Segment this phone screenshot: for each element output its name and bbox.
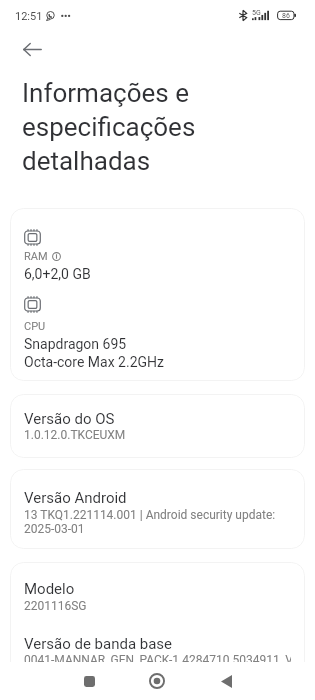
staticText: 2025-03-01 (24, 522, 85, 536)
staticText: 1.0.12.0.TKCEUXM (24, 428, 126, 442)
staticText: 6,0+2,0 GB (24, 266, 91, 282)
button[interactable]: RAM (10, 208, 305, 381)
staticText: 5G (252, 9, 261, 17)
staticText: Versão do OS (24, 410, 115, 428)
staticText: 2201116SG (24, 599, 87, 613)
staticText: 86 (282, 12, 290, 20)
button[interactable]: Versão Android (10, 469, 305, 549)
staticText: Modelo (24, 580, 75, 598)
button[interactable]: Back (11, 34, 54, 64)
button[interactable]: Versão do OS (10, 394, 305, 458)
staticText: Octa-core Max 2.2GHz (24, 354, 164, 370)
staticText: 12:51 (15, 10, 43, 23)
staticText: Versão Android (24, 489, 127, 507)
staticText: Snapdragon 695 (24, 336, 127, 352)
button[interactable]: Home (134, 666, 180, 696)
staticText: Informações e especificações detalhadas (22, 78, 225, 176)
staticText: 13 TKQ1.221114.001 | Android security up… (24, 508, 276, 522)
staticText: CPU (24, 320, 46, 333)
button[interactable]: Back (203, 666, 249, 696)
staticText: 0041-MANNAR_GEN_PACK-1.4284710.5034911_V (24, 653, 291, 667)
button[interactable]: Recent apps (66, 666, 112, 696)
staticText: Versão de banda base (24, 635, 173, 653)
staticText: RAM (24, 250, 48, 263)
button[interactable]: Modelo (10, 562, 305, 692)
